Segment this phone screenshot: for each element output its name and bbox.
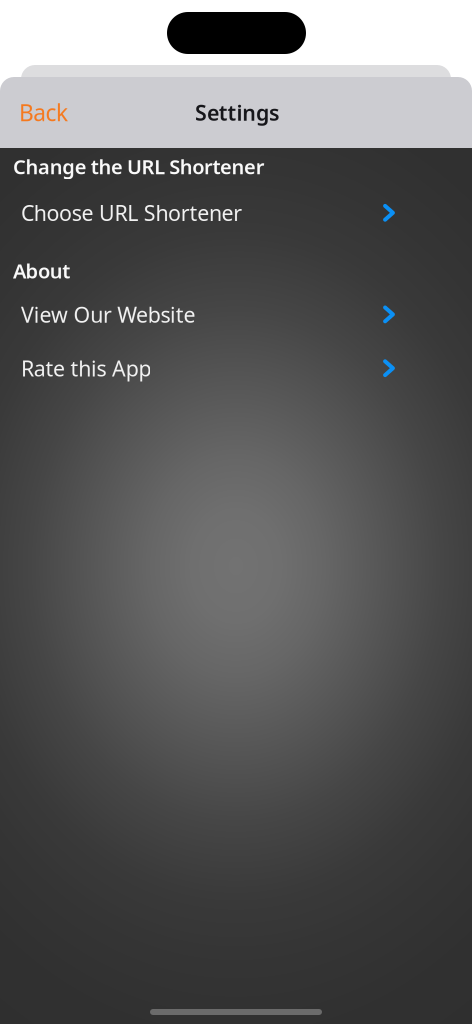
staticText: About [13, 257, 70, 284]
staticText: Settings [195, 98, 280, 127]
button[interactable]: View Our Website [0, 291, 472, 337]
staticText: Rate this App [21, 354, 151, 382]
staticText: View Our Website [21, 300, 195, 328]
staticText: Choose URL Shortener [21, 199, 242, 227]
button[interactable]: Choose URL Shortener [0, 190, 472, 236]
button[interactable]: Back [0, 90, 82, 134]
staticText: Back [19, 97, 68, 127]
button[interactable]: Rate this App [0, 345, 472, 391]
staticText: Change the URL Shortener [13, 153, 265, 180]
